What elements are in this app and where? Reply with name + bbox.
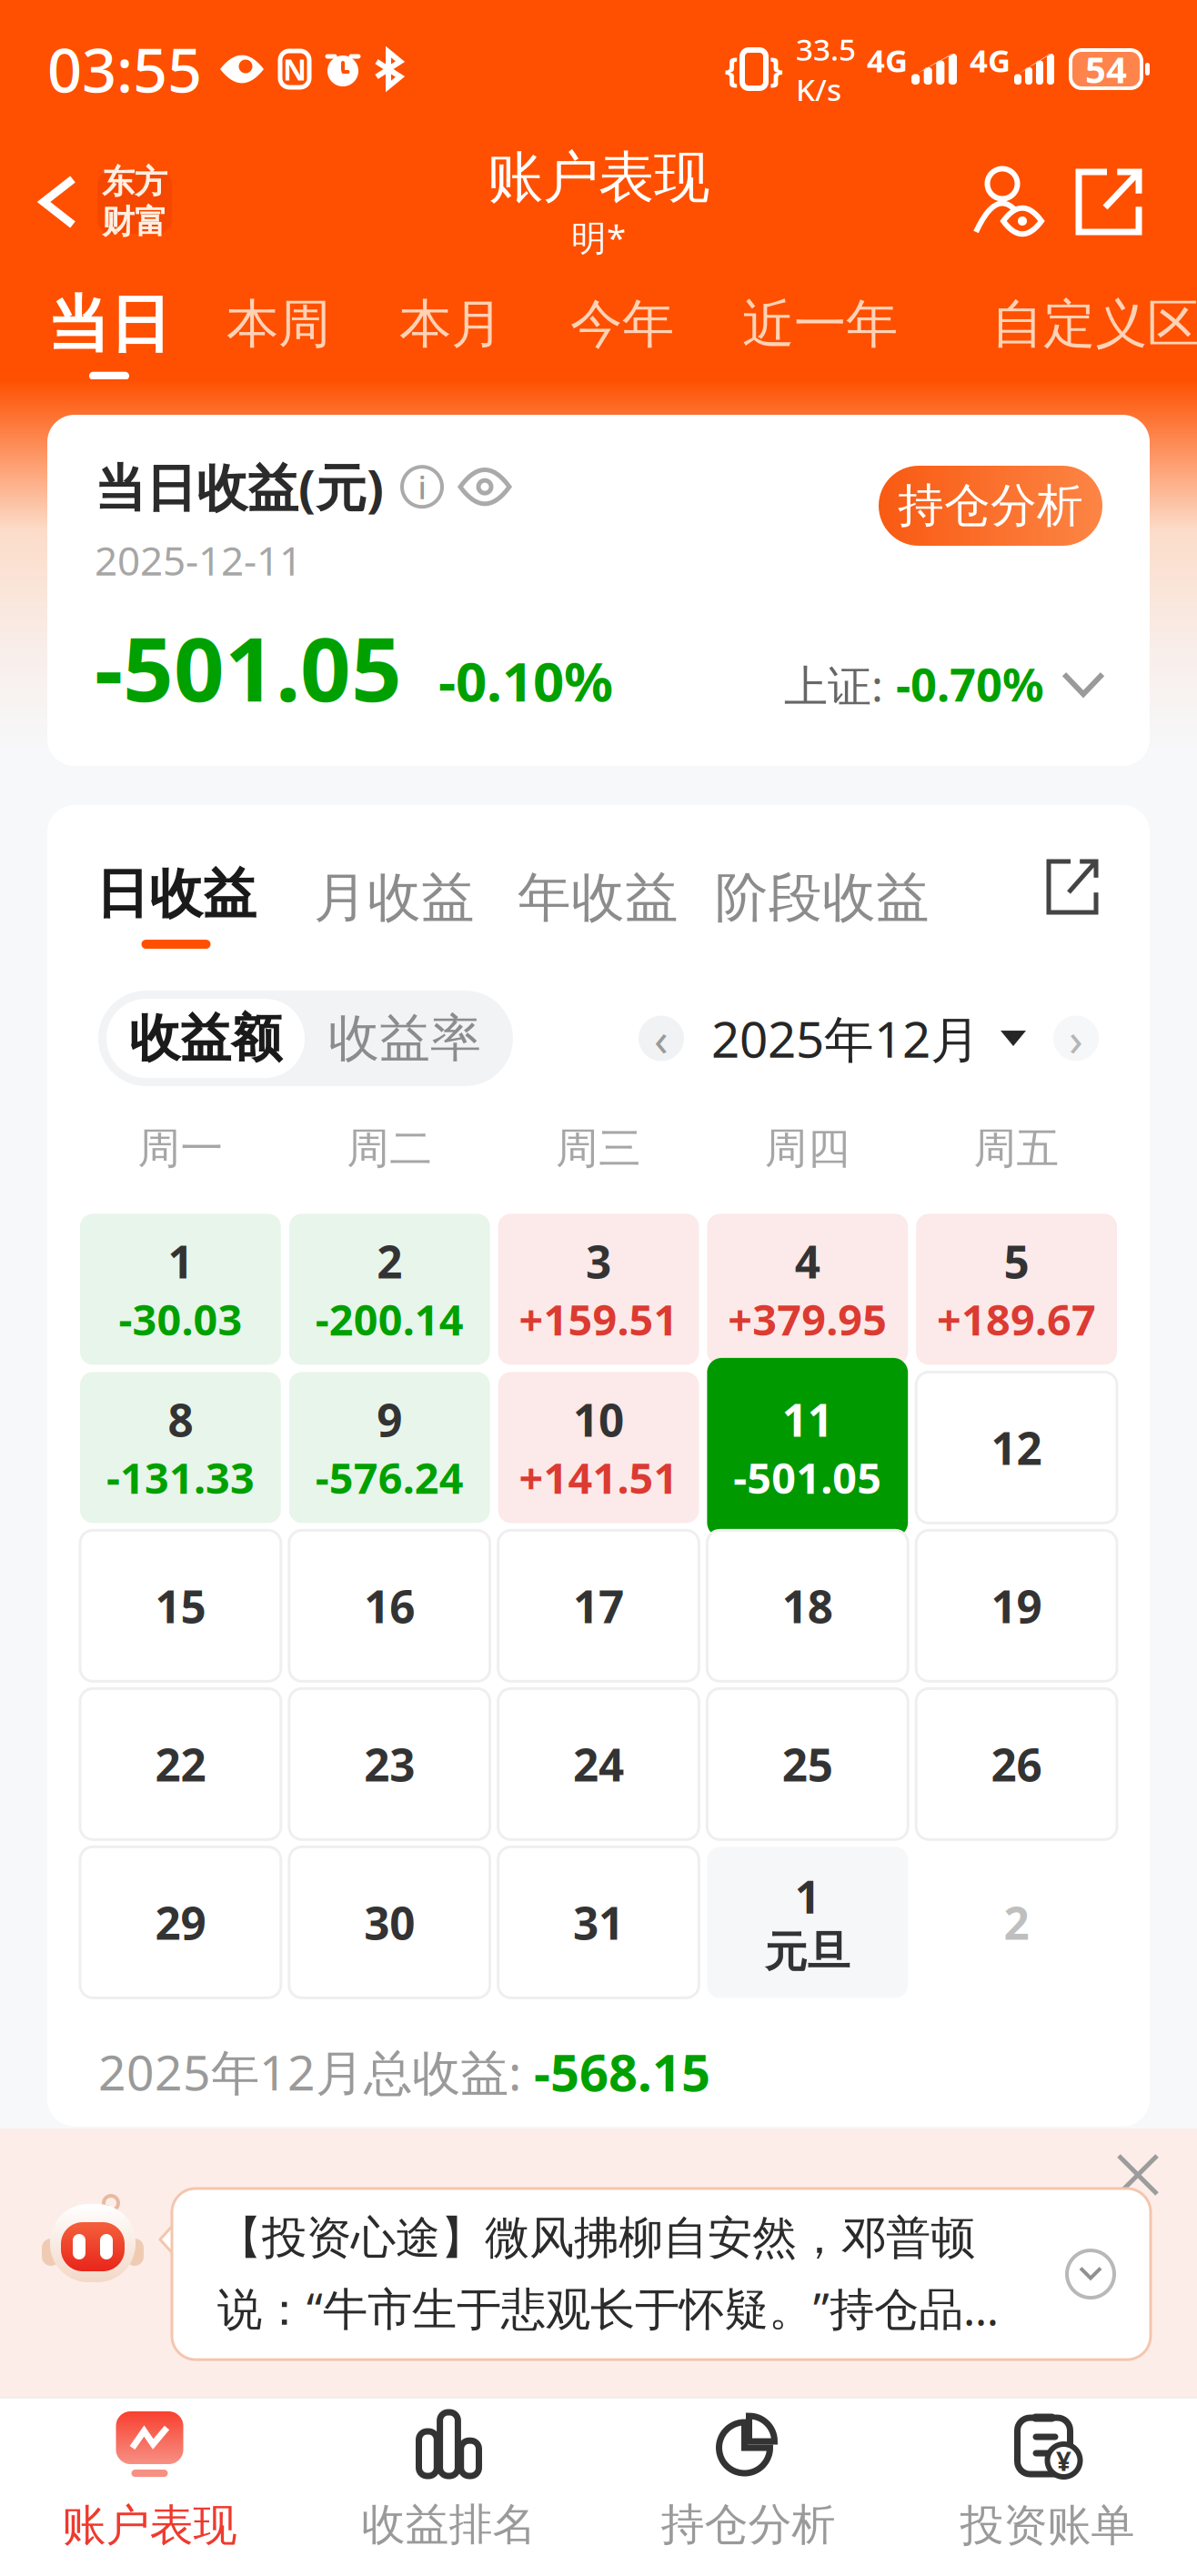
staticText: 29 xyxy=(155,1893,206,1952)
staticText: 4G xyxy=(970,39,1011,81)
button[interactable]: 3 xyxy=(498,1214,699,1365)
staticText: 1 xyxy=(168,1231,193,1291)
button[interactable]: 2 xyxy=(916,1847,1117,1998)
button[interactable]: 26 xyxy=(916,1689,1117,1840)
button[interactable]: 阶段收益 xyxy=(715,865,930,931)
staticText: ¥ xyxy=(1056,2443,1071,2478)
button[interactable]: 5 xyxy=(916,1214,1117,1365)
staticText: 31 xyxy=(573,1893,624,1952)
button[interactable]: 1 xyxy=(80,1214,281,1365)
staticText: -576.24 xyxy=(315,1449,464,1505)
button[interactable]: 1 xyxy=(707,1847,908,1998)
staticText: 26 xyxy=(991,1734,1042,1794)
button[interactable]: 近一年 xyxy=(742,292,898,356)
staticText: 账户表现 xyxy=(62,2499,237,2552)
staticText: 持仓分析 xyxy=(661,2498,835,2551)
staticText: N xyxy=(283,50,307,89)
button[interactable]: 【投资心途】微风拂柳自安然，邓普顿 xyxy=(172,2189,1151,2360)
button[interactable]: 11 xyxy=(707,1372,908,1523)
staticText: 东方 财富 xyxy=(102,162,167,242)
button[interactable]: 15 xyxy=(80,1530,281,1681)
button[interactable]: 当日 xyxy=(47,287,171,380)
button[interactable]: 18 xyxy=(707,1530,908,1681)
staticText: { xyxy=(725,47,739,92)
staticText: 11 xyxy=(782,1390,833,1449)
staticText: +189.67 xyxy=(937,1291,1096,1347)
staticText: 本周 xyxy=(226,292,330,356)
staticText: 2025年12月总收益: xyxy=(98,2039,521,2104)
button[interactable]: Back xyxy=(36,152,179,252)
button[interactable]: 31 xyxy=(498,1847,699,1998)
button[interactable]: 30 xyxy=(289,1847,490,1998)
button[interactable]: 持仓分析 xyxy=(879,466,1102,546)
button[interactable]: 12 xyxy=(916,1372,1117,1523)
staticText: 明* xyxy=(571,214,626,260)
button[interactable]: Share xyxy=(1049,861,1096,912)
button[interactable]: 本周 xyxy=(226,292,330,356)
staticText: +159.51 xyxy=(519,1291,678,1347)
staticText: 1 xyxy=(795,1867,820,1926)
button[interactable]: Previous month xyxy=(639,1016,684,1061)
staticText: ‹ xyxy=(654,1008,669,1069)
staticText: 当日收益(元) xyxy=(95,453,384,521)
button[interactable]: 收益率 xyxy=(305,999,505,1078)
staticText: 17 xyxy=(573,1576,624,1636)
button[interactable]: 收益额 xyxy=(106,999,305,1078)
button[interactable]: 4 xyxy=(707,1214,908,1365)
button[interactable]: 日收益 xyxy=(96,861,256,949)
button[interactable]: 本月 xyxy=(399,292,503,356)
staticText: 4G xyxy=(867,39,908,81)
button[interactable]: 10 xyxy=(498,1372,699,1523)
staticText: 2025-12-11 xyxy=(95,533,302,587)
button[interactable]: 自定义区间 xyxy=(991,292,1197,356)
staticText: 22 xyxy=(155,1734,206,1794)
staticText: 4 xyxy=(795,1231,820,1291)
staticText: -131.33 xyxy=(106,1449,255,1505)
button[interactable]: 账户表现 xyxy=(0,2386,299,2576)
staticText: 今年 xyxy=(570,292,674,356)
staticText: 周五 xyxy=(974,1122,1059,1175)
staticText: 周三 xyxy=(556,1122,641,1175)
staticText: 2 xyxy=(1004,1893,1029,1952)
staticText: 账户表现 xyxy=(488,143,709,212)
button[interactable]: ¥ xyxy=(898,2386,1197,2576)
staticText: 23 xyxy=(364,1734,415,1794)
staticText: -30.03 xyxy=(119,1291,242,1347)
staticText: +379.95 xyxy=(728,1291,887,1347)
button[interactable]: 今年 xyxy=(570,292,674,356)
staticText: 15 xyxy=(155,1576,206,1636)
staticText: 18 xyxy=(782,1576,833,1636)
button[interactable]: 19 xyxy=(916,1530,1117,1681)
button[interactable]: 收益排名 xyxy=(299,2387,598,2576)
button[interactable]: 16 xyxy=(289,1530,490,1681)
button[interactable]: Next month xyxy=(1053,1016,1099,1061)
staticText: 月收益 xyxy=(314,865,475,931)
button[interactable]: 2 xyxy=(289,1214,490,1365)
button[interactable]: 持仓分析 xyxy=(598,2387,898,2576)
button[interactable]: 22 xyxy=(80,1689,281,1840)
button[interactable]: 8 xyxy=(80,1372,281,1523)
button[interactable]: 2025年12月 xyxy=(711,1005,1026,1071)
button[interactable]: 月收益 xyxy=(314,865,475,931)
button[interactable]: 24 xyxy=(498,1689,699,1840)
staticText: 近一年 xyxy=(742,292,898,356)
button[interactable]: Close xyxy=(1102,2139,1173,2210)
button[interactable]: 17 xyxy=(498,1530,699,1681)
staticText: 33.5 K/s xyxy=(796,29,856,109)
button[interactable]: 9 xyxy=(289,1372,490,1523)
staticText: 24 xyxy=(573,1734,624,1794)
staticText: 19 xyxy=(991,1576,1042,1636)
button[interactable]: 23 xyxy=(289,1689,490,1840)
staticText: 年收益 xyxy=(518,865,679,931)
button[interactable]: 年收益 xyxy=(518,865,679,931)
staticText: i xyxy=(418,466,426,508)
staticText: 周一 xyxy=(138,1122,223,1175)
button[interactable]: 29 xyxy=(80,1847,281,1998)
button[interactable]: 25 xyxy=(707,1689,908,1840)
staticText: 元旦 xyxy=(765,1926,850,1978)
staticText: › xyxy=(1069,1008,1083,1069)
button[interactable]: Share xyxy=(1079,172,1139,232)
staticText: 阶段收益 xyxy=(715,865,930,931)
staticText: 说：“牛市生于悲观长于怀疑。”持仓品… xyxy=(217,2278,999,2338)
button[interactable]: Account xyxy=(975,169,1041,235)
